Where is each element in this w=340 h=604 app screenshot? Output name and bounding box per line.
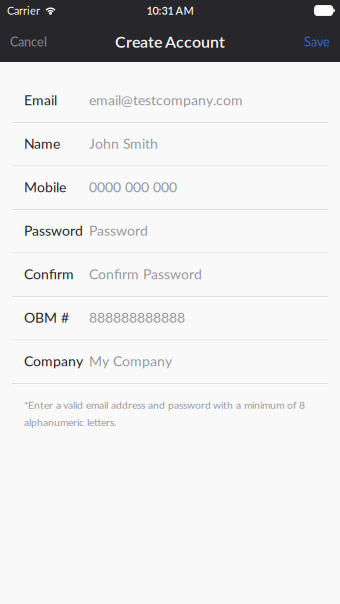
button[interactable]: Email — [0, 80, 340, 124]
staticText: Save — [304, 34, 330, 49]
staticText: Confirm Password — [89, 265, 202, 282]
staticText: Password — [24, 222, 83, 239]
staticText: OBM # — [24, 309, 69, 326]
staticText: Name — [24, 135, 60, 152]
staticText: Email — [24, 91, 57, 108]
button[interactable]: Company — [0, 341, 340, 385]
staticText: *Enter a valid email address and passwor… — [24, 398, 305, 428]
staticText: 0000 000 000 — [89, 178, 177, 195]
button[interactable]: Mobile — [0, 167, 340, 211]
staticText: Mobile — [24, 178, 66, 195]
button[interactable]: Password — [0, 211, 340, 254]
button[interactable]: OBM # — [0, 298, 340, 341]
staticText: 10:31 AM — [146, 4, 193, 17]
button[interactable]: Save — [294, 21, 340, 62]
button[interactable]: Confirm — [0, 254, 340, 298]
button[interactable]: Cancel — [0, 21, 57, 62]
staticText: Cancel — [10, 34, 47, 49]
staticText: email@testcompany.com — [89, 91, 243, 108]
staticText: 888888888888 — [89, 309, 185, 326]
staticText: Carrier — [7, 4, 40, 17]
staticText: Confirm — [24, 265, 74, 282]
staticText: Company — [24, 352, 83, 369]
button[interactable]: Name — [0, 124, 340, 167]
staticText: Create Account — [115, 32, 225, 51]
staticText: My Company — [89, 352, 172, 369]
staticText: Password — [89, 222, 148, 239]
staticText: John Smith — [89, 135, 158, 152]
